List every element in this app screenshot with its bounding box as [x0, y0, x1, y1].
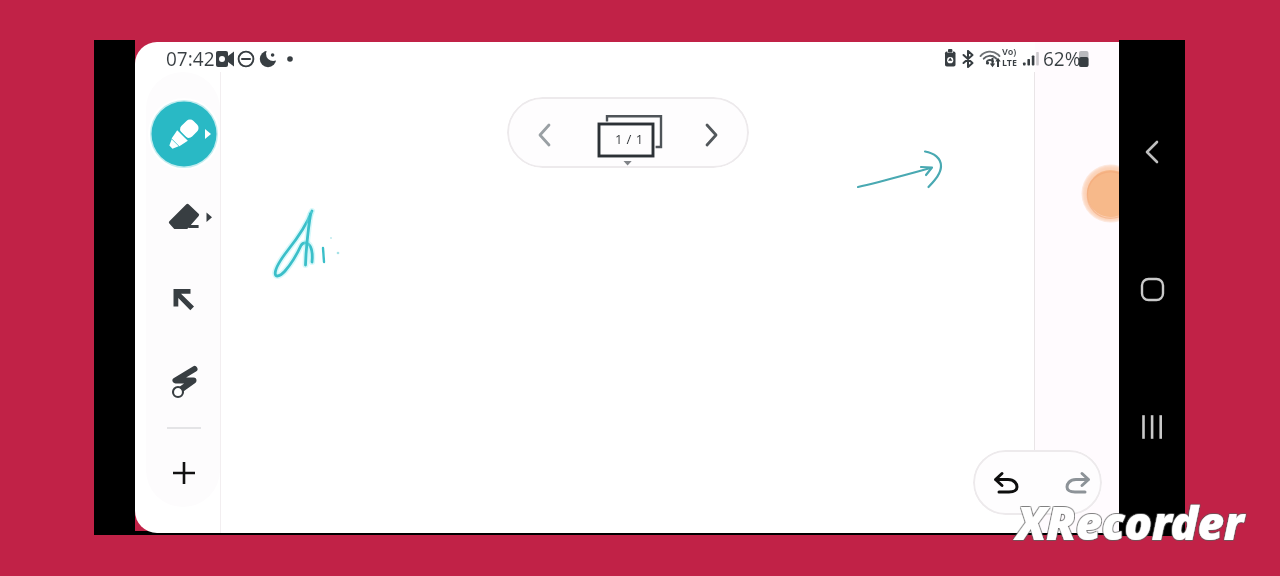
staticText: XRecorder: [1016, 490, 1244, 553]
staticText: XRecorder: [1015, 492, 1243, 555]
staticText: LTE: [1002, 56, 1018, 68]
button[interactable]: Page 1 of 1: [594, 112, 666, 164]
staticText: XRecorder: [1017, 490, 1245, 553]
staticText: 62%: [1043, 46, 1081, 72]
staticText: XRecorder: [1016, 491, 1244, 554]
button[interactable]: Back: [1128, 128, 1176, 176]
staticText: 1 / 1: [615, 130, 644, 148]
button[interactable]: Home: [1128, 265, 1176, 313]
button[interactable]: Next page: [688, 111, 736, 159]
staticText: XRecorder: [1017, 492, 1245, 555]
button[interactable]: Add: [160, 449, 208, 497]
staticText: XRecorder: [1015, 491, 1243, 554]
button[interactable]: Screen recorder: [1081, 164, 1119, 223]
button[interactable]: Previous page: [521, 111, 569, 159]
button[interactable]: Lasso tool: [160, 358, 208, 406]
button[interactable]: Recent apps: [1128, 403, 1176, 451]
button[interactable]: Pen tool: [147, 97, 221, 171]
button[interactable]: Undo: [986, 472, 1034, 515]
staticText: XRecorder: [1016, 492, 1244, 555]
button[interactable]: Redo: [1050, 472, 1098, 515]
staticText: 07:42: [166, 46, 215, 72]
staticText: Vo): [1002, 45, 1017, 57]
staticText: XRecorder: [1015, 490, 1243, 553]
staticText: XRecorder: [1017, 491, 1245, 554]
button[interactable]: Select tool: [160, 276, 208, 324]
button[interactable]: Eraser tool: [160, 193, 208, 241]
